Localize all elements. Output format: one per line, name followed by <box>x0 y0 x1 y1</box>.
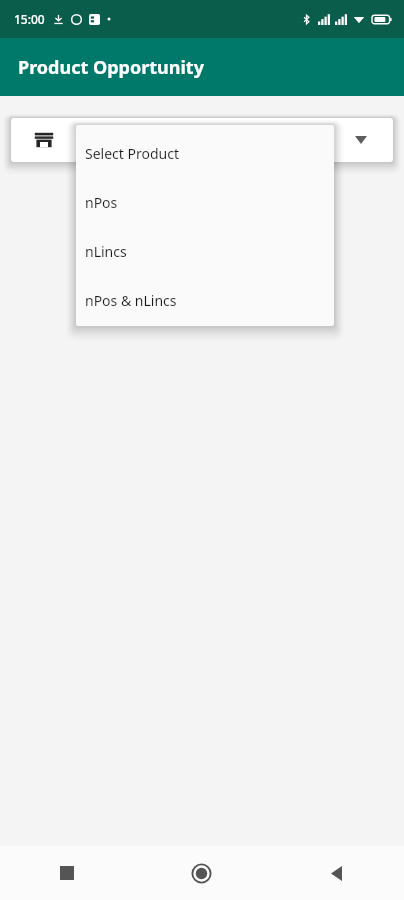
button[interactable]: Home <box>134 846 269 900</box>
staticText: nPos <box>85 193 118 212</box>
staticText: nPos & nLincs <box>85 291 177 310</box>
staticText: Select Product <box>85 144 179 163</box>
button[interactable]: nLincs <box>76 227 334 276</box>
staticText: nLincs <box>85 242 127 261</box>
staticText: 15:00 <box>14 11 45 27</box>
button[interactable]: Recents <box>0 846 134 900</box>
button[interactable]: Back <box>269 846 404 900</box>
button[interactable]: Select Product <box>76 129 334 178</box>
button[interactable] <box>11 118 393 162</box>
button[interactable]: nPos <box>76 178 334 227</box>
button[interactable]: nPos & nLincs <box>76 276 334 325</box>
staticText: Product Opportunity <box>18 55 204 80</box>
